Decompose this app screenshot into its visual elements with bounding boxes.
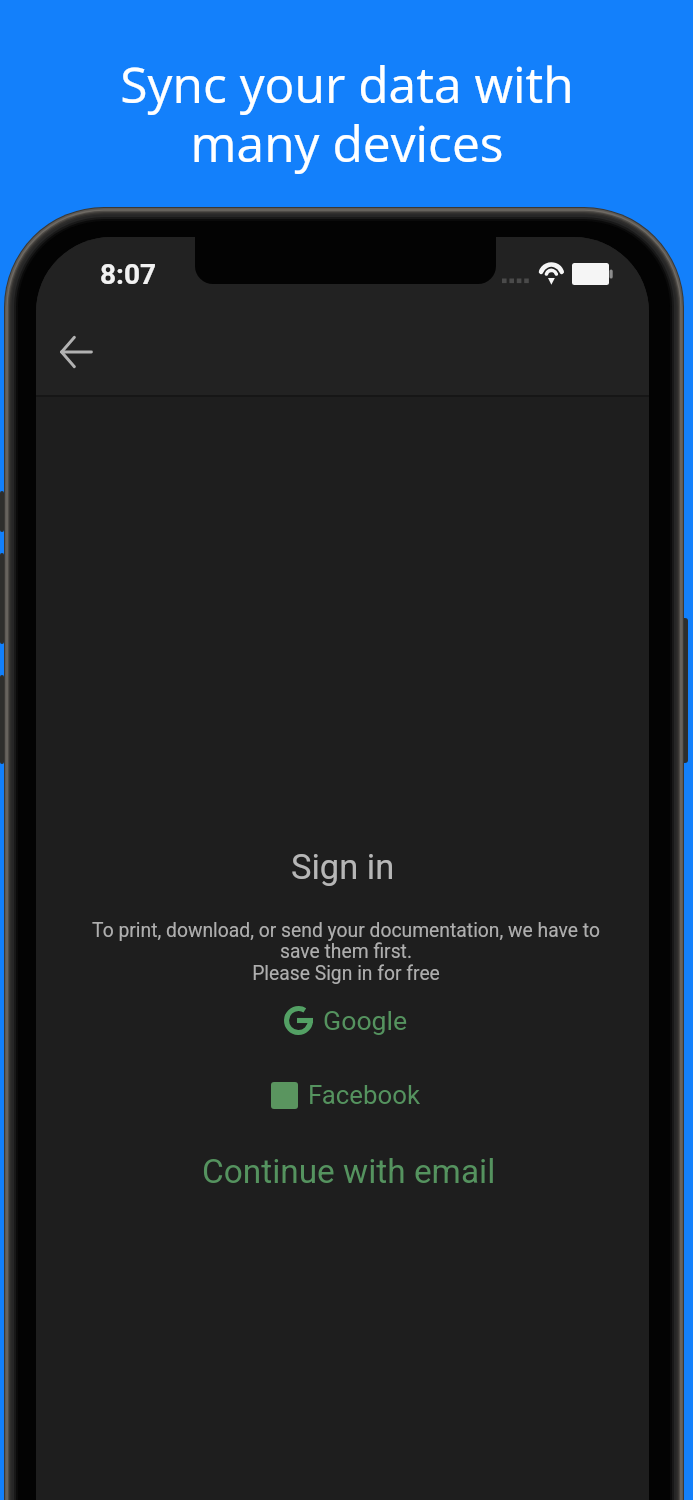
staticText: To print, download, or send your documen… xyxy=(92,919,600,985)
staticText: Facebook xyxy=(308,1080,421,1110)
button[interactable]: Continue with email xyxy=(202,1152,496,1191)
staticText: Sign in xyxy=(291,847,395,887)
button[interactable]: Google xyxy=(284,1005,408,1036)
staticText: Continue with email xyxy=(202,1152,496,1191)
staticText: Google xyxy=(323,1005,408,1036)
button[interactable]: Facebook xyxy=(271,1080,421,1110)
staticText: Sync your data with many devices xyxy=(120,50,574,177)
button[interactable]: Back xyxy=(50,326,102,378)
staticText: 8:07 xyxy=(100,258,157,291)
